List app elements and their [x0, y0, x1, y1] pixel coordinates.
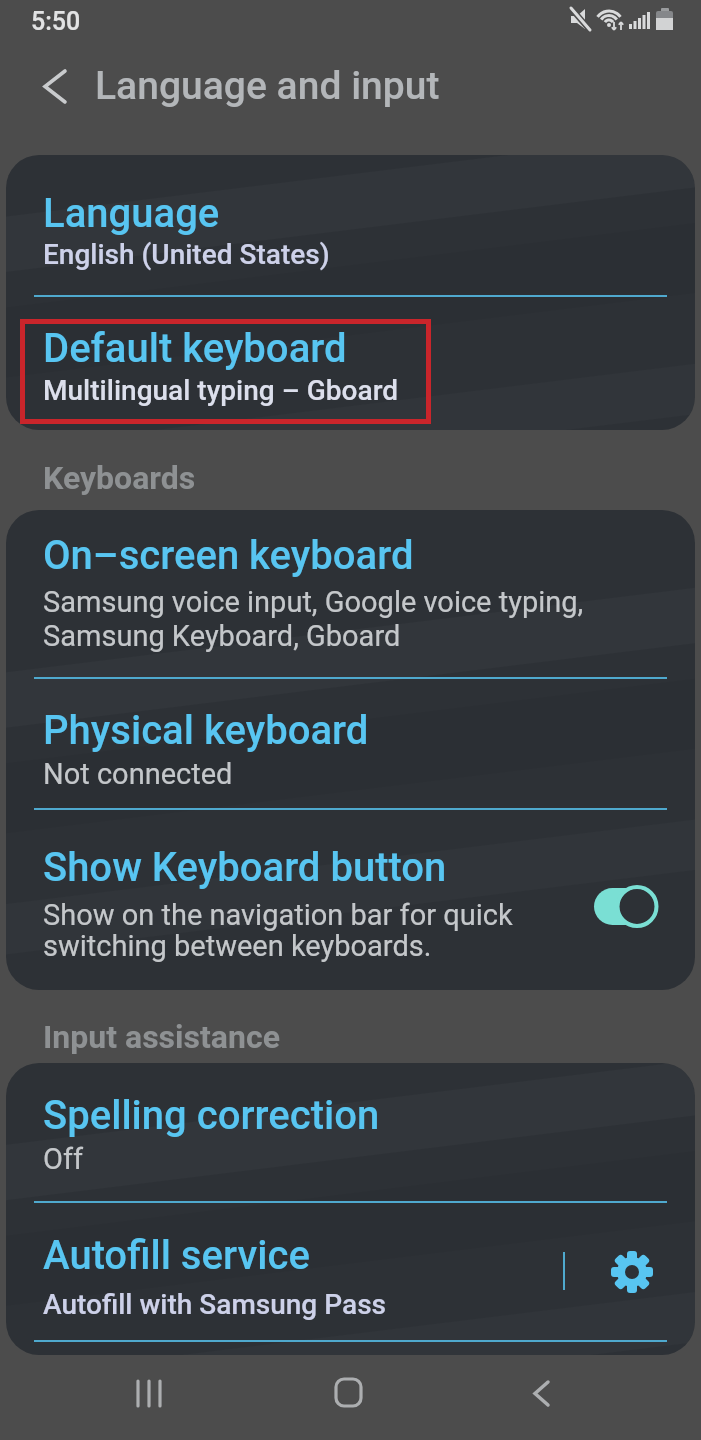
- staticText: Input assistance: [43, 1018, 280, 1056]
- button[interactable]: [594, 1234, 670, 1310]
- staticText: Autofill service: [43, 1232, 310, 1279]
- button[interactable]: Show Keyboard button: [6, 810, 695, 990]
- staticText: Not connected: [43, 757, 233, 791]
- button[interactable]: [500, 1370, 584, 1430]
- staticText: Samsung Keyboard, Gboard: [43, 619, 401, 653]
- staticText: Spelling correction: [43, 1092, 380, 1139]
- button[interactable]: [28, 61, 80, 113]
- button[interactable]: [110, 1370, 194, 1430]
- staticText: 5:50: [31, 7, 81, 36]
- button[interactable]: On–screen keyboard: [6, 510, 695, 677]
- button[interactable]: [305, 1370, 389, 1430]
- staticText: Samsung voice input, Google voice typing…: [43, 585, 584, 619]
- staticText: Default keyboard: [43, 325, 347, 372]
- staticText: Show on the navigation bar for quick: [43, 898, 513, 932]
- staticText: Language and input: [95, 63, 440, 109]
- staticText: Language: [43, 190, 220, 237]
- staticText: Off: [43, 1142, 84, 1176]
- button[interactable]: [584, 878, 674, 938]
- button[interactable]: Language: [6, 155, 695, 295]
- staticText: Autofill with Samsung Pass: [43, 1288, 387, 1321]
- button[interactable]: Autofill service: [6, 1203, 695, 1355]
- staticText: Show Keyboard button: [43, 844, 447, 891]
- staticText: Physical keyboard: [43, 707, 369, 754]
- staticText: switching between keyboards.: [43, 929, 432, 963]
- staticText: Keyboards: [43, 459, 196, 497]
- button[interactable]: Default keyboard: [6, 297, 695, 430]
- staticText: English (United States): [43, 238, 330, 271]
- staticText: Multilingual typing – Gboard: [43, 374, 399, 407]
- button[interactable]: Physical keyboard: [6, 679, 695, 808]
- button[interactable]: Spelling correction: [6, 1063, 695, 1201]
- staticText: On–screen keyboard: [43, 532, 414, 579]
